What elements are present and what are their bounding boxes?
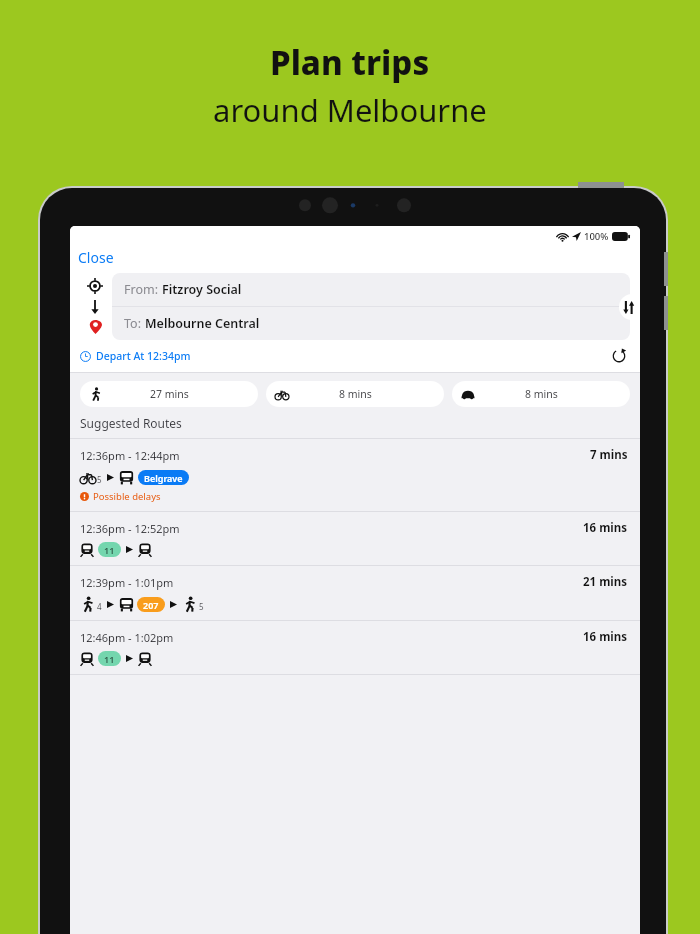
staticText: 12:36pm - 12:44pm [80,448,180,463]
staticText: 8 mins [525,387,558,401]
staticText: Belgrave [144,472,183,484]
staticText: 5 [199,601,204,612]
staticText: Fitzroy Social [162,281,242,298]
staticText: 8 mins [339,387,372,401]
button[interactable]: 27 mins [80,381,258,407]
staticText: 7 mins [590,447,628,463]
button[interactable]: To: [112,307,630,340]
button[interactable]: 12:36pm - 12:44pm [70,439,640,512]
staticText: 21 mins [583,574,628,590]
staticText: 5 [97,474,102,485]
staticText: Melbourne Central [145,315,260,332]
staticText: Depart At 12:34pm [96,349,191,363]
staticText: around Melbourne [213,89,487,131]
button[interactable]: Swap origin and destination [619,294,640,320]
staticText: Suggested Routes [80,415,182,431]
button[interactable]: 12:36pm - 12:52pm [70,512,640,566]
staticText: To: [124,315,145,332]
button[interactable]: Depart At 12:34pm [80,349,191,363]
staticText: 16 mins [583,520,628,536]
staticText: Close [78,248,114,267]
staticText: 11 [104,544,115,556]
staticText: 100% [584,230,609,243]
staticText: 16 mins [583,629,628,645]
button[interactable]: 8 mins [452,381,630,407]
staticText: Plan trips [270,40,430,85]
staticText: 12:36pm - 12:52pm [80,521,180,536]
staticText: Possible delays [93,490,161,503]
staticText: 4 [97,601,102,612]
staticText: From: [124,281,162,298]
button[interactable]: 12:39pm - 1:01pm [70,566,640,621]
staticText: 207 [143,599,159,611]
button[interactable]: Refresh [608,345,630,367]
button[interactable]: 12:46pm - 1:02pm [70,621,640,675]
staticText: 27 mins [150,387,189,401]
staticText: 11 [104,653,115,665]
staticText: 12:39pm - 1:01pm [80,575,174,590]
button[interactable]: From: [112,273,630,306]
button[interactable]: 8 mins [266,381,444,407]
staticText: 12:46pm - 1:02pm [80,630,174,645]
button[interactable]: Close [70,246,122,273]
